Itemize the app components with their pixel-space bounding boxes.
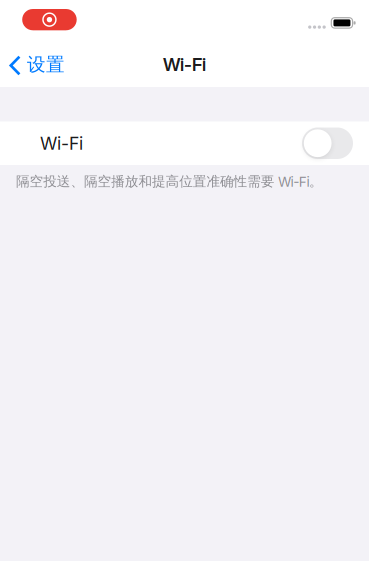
button[interactable]: 返回设置 <box>0 42 75 86</box>
button[interactable]: Wi-Fi <box>0 121 369 165</box>
staticText: 隔空投送、隔空播放和提高位置准确性需要 Wi-Fi。 <box>16 173 323 190</box>
staticText: Wi-Fi <box>163 54 206 75</box>
staticText: 设置 <box>27 53 65 76</box>
staticText: Wi-Fi <box>40 133 83 154</box>
